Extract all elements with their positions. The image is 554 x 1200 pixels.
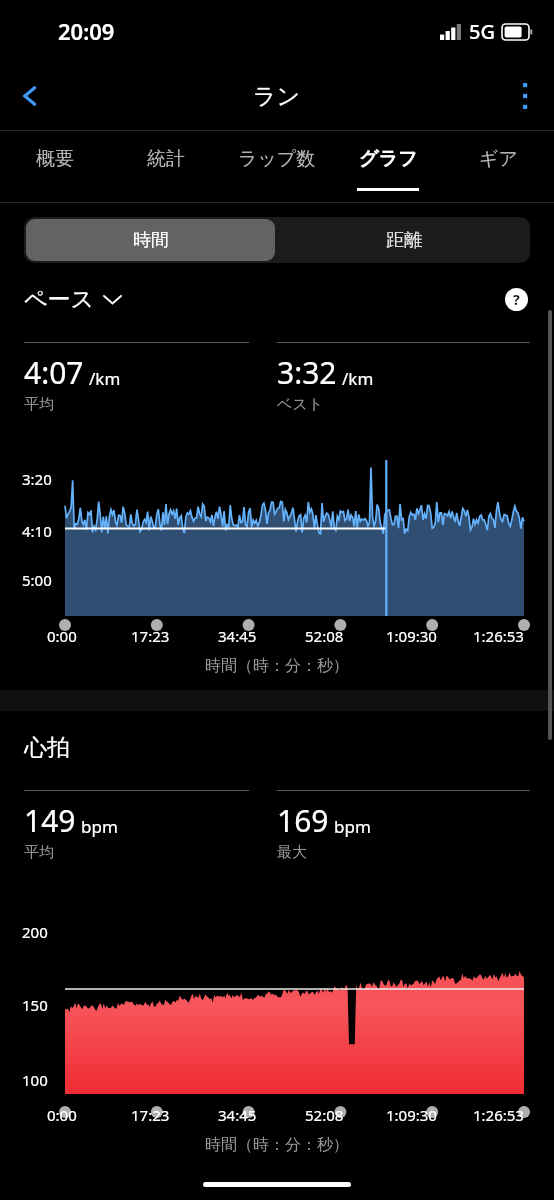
staticText: ギア <box>479 147 518 171</box>
staticText: 149 <box>24 800 76 841</box>
staticText: 統計 <box>147 147 185 171</box>
staticText: bpm <box>81 815 118 838</box>
staticText: グラフ <box>359 147 418 171</box>
staticText: 0:00 <box>47 626 77 646</box>
staticText: 最大 <box>277 843 307 862</box>
staticText: 距離 <box>386 229 422 252</box>
button[interactable]: ギア <box>443 131 554 203</box>
staticText: 3:32 <box>277 352 337 393</box>
staticText: 時間（時：分：秒） <box>0 656 554 676</box>
staticText: ? <box>513 290 520 309</box>
staticText: 20:09 <box>58 16 115 46</box>
staticText: ベスト <box>277 395 324 414</box>
staticText: ラップ数 <box>238 147 316 171</box>
staticText: 時間 <box>133 229 169 252</box>
staticText: 概要 <box>36 147 74 171</box>
staticText: bpm <box>334 815 371 838</box>
button[interactable]: ラップ数 <box>221 131 332 203</box>
button[interactable]: 時間 <box>26 219 275 261</box>
button[interactable]: グラフ <box>332 131 443 203</box>
staticText: 0:00 <box>47 1105 77 1125</box>
staticText: 17:23 <box>131 1105 170 1125</box>
button[interactable]: Back <box>0 62 60 130</box>
staticText: 52:08 <box>305 626 344 646</box>
staticText: 1:09:30 <box>386 1105 437 1125</box>
button[interactable]: 統計 <box>110 131 221 203</box>
staticText: 5:00 <box>22 570 52 590</box>
staticText: 5G <box>469 18 495 45</box>
staticText: 心拍 <box>24 733 70 762</box>
staticText: ペース <box>24 285 95 314</box>
button[interactable]: 距離 <box>277 217 530 263</box>
staticText: 1:26:53 <box>473 1105 524 1125</box>
staticText: 平均 <box>24 843 54 862</box>
staticText: 3:20 <box>22 469 52 489</box>
staticText: /km <box>89 367 121 390</box>
button[interactable]: Help <box>503 286 530 313</box>
button[interactable]: ペース <box>24 285 121 314</box>
staticText: 4:07 <box>24 352 84 393</box>
staticText: 100 <box>22 1070 48 1090</box>
staticText: 200 <box>22 922 48 942</box>
button[interactable]: More options <box>498 62 554 130</box>
staticText: 1:09:30 <box>386 626 437 646</box>
staticText: 時間（時：分：秒） <box>0 1135 554 1155</box>
staticText: /km <box>342 367 374 390</box>
staticText: 34:45 <box>218 1105 257 1125</box>
staticText: 169 <box>277 800 329 841</box>
staticText: 4:10 <box>22 521 52 541</box>
staticText: 平均 <box>24 395 54 414</box>
staticText: 1:26:53 <box>473 626 524 646</box>
button[interactable]: 概要 <box>0 131 110 203</box>
staticText: 150 <box>22 995 48 1015</box>
staticText: 34:45 <box>218 626 257 646</box>
staticText: 52:08 <box>305 1105 344 1125</box>
staticText: 17:23 <box>131 626 170 646</box>
staticText: ラン <box>253 82 301 111</box>
